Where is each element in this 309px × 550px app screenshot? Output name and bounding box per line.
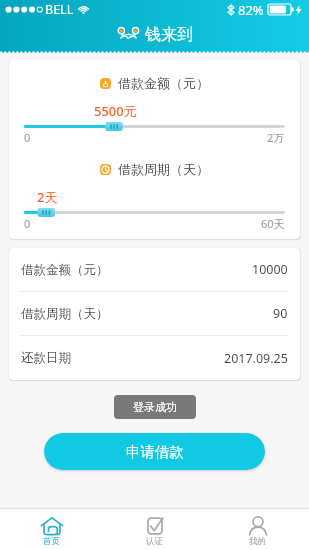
button[interactable]: 申请借款	[44, 433, 265, 470]
staticText: 0	[24, 130, 31, 145]
staticText: 我的	[249, 536, 266, 547]
staticText: BELL	[45, 1, 74, 18]
button[interactable]: 首页	[0, 509, 103, 550]
staticText: 钱来到	[145, 25, 193, 45]
staticText: 借款周期（天）	[21, 306, 109, 322]
staticText: 82%	[238, 1, 264, 19]
staticText: 借款金额（元）	[118, 75, 209, 91]
staticText: 60天	[261, 216, 285, 231]
button[interactable]: 认证	[103, 509, 206, 550]
button[interactable]: 借款金额（元）	[9, 248, 300, 292]
button[interactable]: 还款日期	[9, 336, 300, 380]
button[interactable]: 借款周期（天）	[9, 292, 300, 336]
staticText: 2万	[267, 130, 285, 145]
staticText: 10000	[252, 261, 288, 278]
staticText: 2天	[37, 188, 58, 206]
staticText: 5500元	[94, 102, 137, 120]
staticText: 借款金额（元）	[21, 262, 109, 278]
button[interactable]: 我的	[206, 509, 309, 550]
staticText: 认证	[146, 536, 163, 547]
button[interactable]	[24, 121, 285, 132]
staticText: 借款周期（天）	[118, 161, 209, 177]
staticText: 2017.09.25	[224, 350, 288, 367]
staticText: 申请借款	[126, 443, 184, 461]
staticText: 首页	[43, 536, 60, 547]
staticText: 0	[24, 216, 31, 231]
staticText: 登录成功	[133, 400, 177, 414]
button[interactable]	[24, 207, 285, 218]
staticText: 90	[273, 305, 288, 322]
staticText: 还款日期	[21, 350, 71, 366]
button[interactable]: 登录成功	[133, 400, 177, 414]
